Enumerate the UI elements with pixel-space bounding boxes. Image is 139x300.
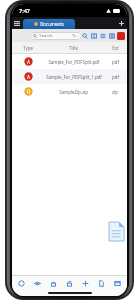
staticText: pdf: [112, 74, 119, 80]
staticText: pdf: [112, 59, 119, 65]
button[interactable]: SampleZip.zip: [12, 84, 127, 99]
staticText: zip: [112, 89, 118, 95]
staticText: Type: [23, 45, 33, 51]
staticText: SampleZip.zip: [59, 89, 88, 95]
button[interactable]: Sample_For_PDFSplit_1.pdf: [12, 69, 127, 84]
button[interactable]: New tab: [116, 17, 127, 29]
staticText: Ext: [112, 45, 119, 51]
staticText: Sample_For_PDFSplit.pdf: [48, 59, 100, 65]
staticText: Title: [69, 45, 78, 51]
button[interactable]: Unlock: [63, 276, 76, 290]
button[interactable]: Search: [30, 32, 82, 40]
staticText: Ti...: [72, 33, 79, 39]
button[interactable]: Close: [117, 32, 125, 40]
button[interactable]: Split view: [108, 32, 116, 40]
button[interactable]: Grid view: [90, 32, 98, 40]
button[interactable]: Document preview: [109, 222, 124, 241]
staticText: Sample_For_PDFSplit_1.pdf: [46, 74, 102, 80]
staticText: Documents: [40, 21, 64, 27]
button[interactable]: Select: [15, 276, 28, 290]
button[interactable]: Archive: [111, 276, 124, 290]
button[interactable]: Menu: [12, 17, 22, 29]
staticText: 7:47: [19, 7, 30, 14]
button[interactable]: Sample_For_PDFSplit.pdf: [12, 54, 127, 69]
button[interactable]: Move: [79, 276, 92, 290]
staticText: Search: [39, 33, 53, 39]
button[interactable]: Documents: [23, 19, 75, 29]
button[interactable]: New file: [95, 276, 108, 290]
button[interactable]: Preview: [31, 276, 44, 290]
button[interactable]: Search: [81, 32, 89, 40]
button[interactable]: List view: [99, 32, 107, 40]
button[interactable]: Lock: [47, 276, 60, 290]
